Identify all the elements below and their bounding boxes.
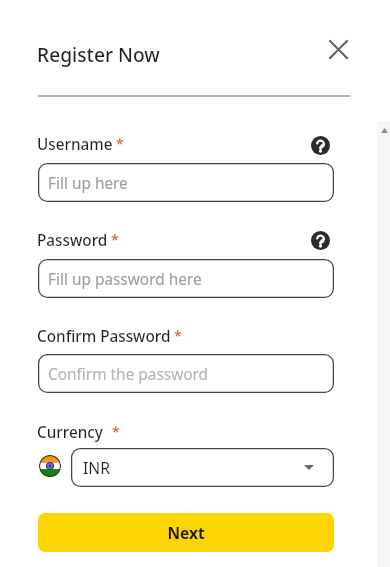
staticText: Currency bbox=[37, 422, 103, 443]
button[interactable]: Close bbox=[324, 35, 352, 63]
button[interactable]: Fill up here bbox=[38, 163, 334, 202]
staticText: Fill up password here bbox=[48, 269, 202, 290]
staticText: Confirm Password bbox=[37, 326, 171, 347]
staticText: * bbox=[112, 422, 120, 441]
staticText: Password bbox=[37, 230, 108, 251]
staticText: * bbox=[111, 230, 119, 249]
staticText: * bbox=[174, 326, 182, 345]
staticText: Fill up here bbox=[48, 173, 128, 194]
button[interactable]: Next bbox=[38, 513, 334, 552]
staticText: * bbox=[116, 134, 124, 153]
button[interactable]: Confirm the password bbox=[38, 354, 334, 393]
button[interactable]: Help bbox=[311, 136, 330, 155]
staticText: INR bbox=[83, 457, 110, 478]
staticText: Username bbox=[37, 134, 113, 155]
button[interactable]: Fill up password here bbox=[38, 259, 334, 298]
staticText: Register Now bbox=[37, 41, 160, 67]
other: India flag bbox=[39, 455, 61, 477]
staticText: Confirm the password bbox=[48, 364, 209, 385]
staticText: Next bbox=[167, 522, 205, 543]
button[interactable]: Currency INR bbox=[71, 448, 334, 487]
button[interactable]: Help bbox=[311, 231, 330, 250]
